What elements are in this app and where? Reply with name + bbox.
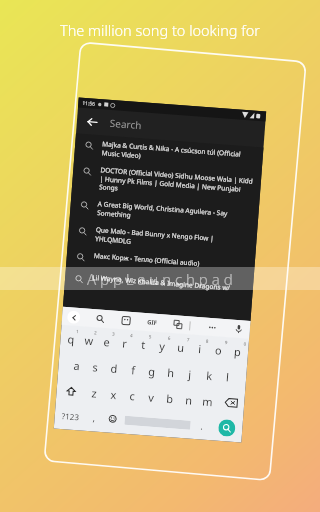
staticText: 5 (149, 333, 152, 340)
staticText: b (166, 391, 174, 406)
staticText: p (234, 344, 242, 359)
button[interactable]: l (217, 363, 238, 390)
staticText: Lil Wayne, Wiz Khalifa & Imagine Dragons… (92, 273, 231, 292)
button[interactable]: DOCTOR (Official Video) Sidhu Moose Wala… (71, 159, 261, 207)
staticText: Que Malo - Bad Bunny x Nengo Flow | YHLQ… (95, 225, 249, 254)
staticText: u (177, 339, 185, 355)
staticText: DOCTOR (Official Video) Sidhu Moose Wala… (99, 165, 253, 203)
staticText: 1 (76, 328, 79, 334)
staticText: . (200, 419, 204, 432)
button[interactable]: x (103, 380, 123, 408)
staticText: e (103, 334, 111, 349)
staticText: c (129, 388, 136, 403)
staticText: i (198, 341, 202, 356)
button[interactable]: Stickers (120, 314, 133, 327)
staticText: A p p L a u n c h p a d (87, 269, 233, 289)
button[interactable]: m (197, 387, 218, 415)
staticText: , (92, 411, 96, 424)
button[interactable]: j (179, 360, 200, 387)
staticText: f (131, 362, 136, 377)
staticText: ?123 (61, 410, 80, 422)
button[interactable]: k (198, 361, 219, 389)
staticText: d (110, 361, 118, 376)
staticText: g (148, 363, 156, 379)
staticText: Search (109, 116, 142, 132)
button[interactable]: e (97, 328, 116, 355)
button[interactable]: t (132, 330, 153, 358)
button[interactable]: Shift (56, 377, 86, 405)
button[interactable]: ?123 (54, 403, 87, 429)
staticText: 4 (130, 332, 133, 338)
button[interactable]: b (159, 384, 180, 412)
button[interactable]: Majka & Curtis & Nika - A csúcson túl (O… (74, 133, 263, 173)
staticText: 7 (187, 336, 190, 342)
button[interactable]: Backspace (216, 389, 245, 417)
staticText: A Great Big World, Christina Aguilera - … (97, 199, 251, 229)
staticText: y (159, 338, 166, 354)
button[interactable]: p (227, 337, 248, 365)
staticText: 8 (206, 338, 209, 344)
button[interactable]: i (189, 334, 210, 362)
button[interactable]: o (208, 336, 229, 363)
button[interactable]: Translate (171, 318, 184, 331)
staticText: a (73, 358, 81, 373)
button[interactable]: a (67, 351, 87, 379)
staticText: k (206, 368, 213, 383)
staticText: 0 (243, 340, 247, 347)
staticText: 2 (94, 329, 97, 335)
staticText: t (141, 337, 146, 352)
button[interactable]: y (151, 332, 172, 359)
button[interactable]: w (79, 326, 98, 353)
staticText: The million song to looking for (0, 20, 320, 40)
button[interactable]: . (193, 413, 211, 438)
staticText: Макс Корж - Тепло (Official audio) (94, 251, 200, 268)
staticText: 3 (112, 331, 115, 337)
button[interactable]: Search (94, 312, 107, 325)
button[interactable]: r (114, 329, 134, 356)
button[interactable]: Lil Wayne, Wiz Khalifa & Imagine Dragons… (64, 267, 253, 303)
staticText: 6 (168, 335, 171, 341)
button[interactable]: Space (124, 416, 191, 430)
staticText: h (167, 365, 175, 380)
staticText: o (215, 342, 223, 358)
button[interactable]: s (85, 353, 105, 380)
staticText: 11:56 (82, 100, 95, 108)
staticText: q (67, 331, 75, 347)
staticText: s (92, 359, 99, 375)
staticText: Majka & Curtis & Nika - A csúcson túl (O… (101, 139, 255, 169)
button[interactable]: Back (83, 113, 101, 130)
button[interactable]: A Great Big World, Christina Aguilera - … (70, 193, 259, 233)
button[interactable]: More options (205, 321, 218, 333)
staticText: v (148, 389, 155, 405)
button[interactable]: g (141, 357, 162, 384)
button[interactable]: u (170, 333, 191, 360)
button[interactable]: Back (76, 107, 265, 147)
button[interactable]: Search (218, 419, 236, 437)
button[interactable]: Макс Корж - Тепло (Official audio) (66, 245, 255, 281)
button[interactable]: v (140, 383, 161, 410)
button[interactable]: f (122, 356, 143, 383)
staticText: l (226, 369, 230, 384)
button[interactable]: Emoji (102, 406, 122, 432)
staticText: r (122, 335, 128, 351)
staticText: z (91, 385, 98, 401)
button[interactable]: n (178, 386, 199, 413)
button[interactable]: Voice input (232, 323, 245, 335)
button[interactable]: Que Malo - Bad Bunny x Nengo Flow | YHLQ… (68, 219, 257, 259)
button[interactable]: , (85, 405, 104, 430)
button[interactable]: Expand toolbar (67, 310, 81, 324)
staticText: GIF (147, 318, 157, 327)
button[interactable]: d (104, 354, 124, 382)
staticText: n (185, 392, 193, 408)
staticText: j (188, 366, 192, 382)
button[interactable]: q (61, 325, 81, 352)
staticText: m (202, 394, 214, 409)
button[interactable]: h (160, 358, 181, 386)
staticText: 9 (225, 339, 228, 345)
button[interactable]: z (84, 379, 105, 406)
staticText: w (84, 333, 94, 348)
staticText: x (110, 387, 117, 402)
button[interactable]: c (122, 382, 142, 409)
